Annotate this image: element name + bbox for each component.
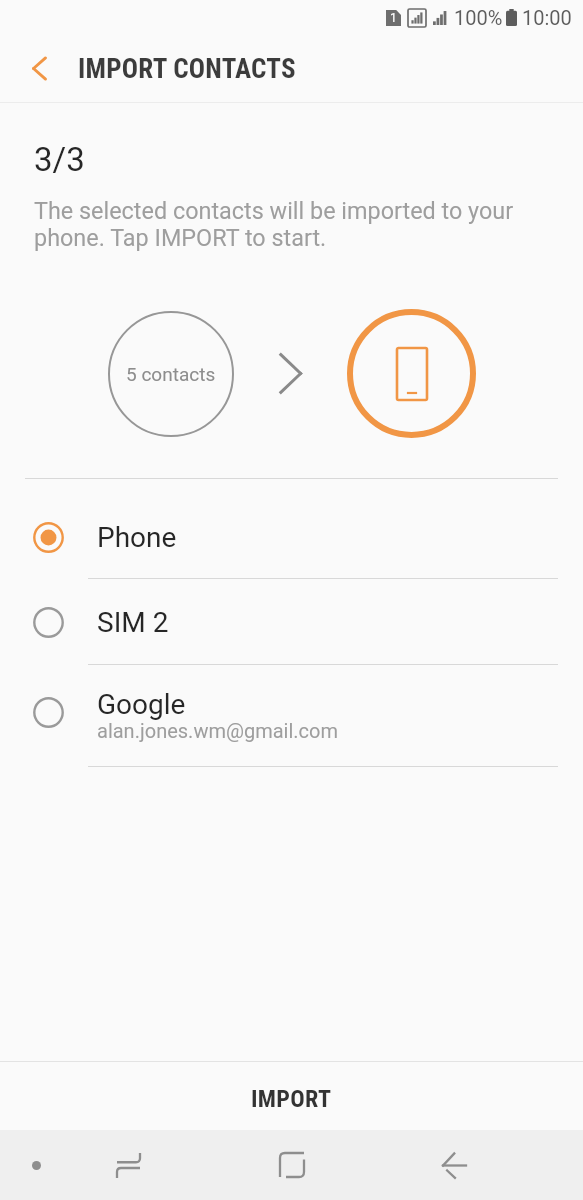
staticText: Phone [97,521,177,554]
staticText: 3/3 [34,140,85,179]
staticText: 5 contacts [126,363,216,385]
staticText: 10:00 [522,6,572,29]
button[interactable]: Home [255,1130,328,1200]
staticText: alan.jones.wm@gmail.com [97,719,338,742]
button[interactable]: IMPORT [0,1062,583,1130]
staticText: The selected contacts will be imported t… [34,197,514,251]
staticText: IMPORT [251,1085,332,1113]
staticText: 1 [390,11,397,25]
button[interactable]: Navigate up [0,35,78,102]
button[interactable]: Recent apps [92,1130,165,1200]
staticText: Google [97,688,186,721]
button[interactable]: SIM 2 [0,579,583,665]
button[interactable]: Back [418,1130,491,1200]
button[interactable]: Phone [0,479,583,579]
staticText: SIM 2 [97,606,169,639]
button[interactable]: Google [0,665,583,767]
staticText: 100% [454,6,503,29]
staticText: IMPORT CONTACTS [78,53,296,85]
button[interactable]: More options [0,1130,73,1200]
